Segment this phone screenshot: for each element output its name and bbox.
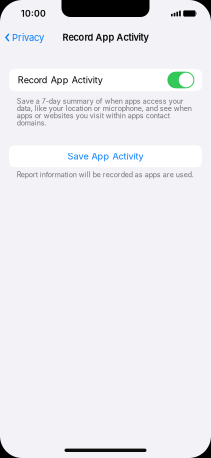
- button[interactable]: Save App Activity: [9, 145, 202, 167]
- staticText: Privacy: [12, 32, 44, 43]
- staticText: Save App Activity: [67, 151, 143, 162]
- staticText: Record App Activity: [62, 32, 148, 43]
- staticText: Save a 7-day summary of when apps access…: [17, 97, 192, 127]
- button[interactable]: Record App Activity: [9, 69, 202, 91]
- staticText: 10:00: [21, 8, 46, 19]
- button[interactable]: Privacy: [0, 32, 47, 43]
- staticText: Report information will be recorded as a…: [17, 170, 194, 179]
- staticText: Record App Activity: [18, 74, 103, 85]
